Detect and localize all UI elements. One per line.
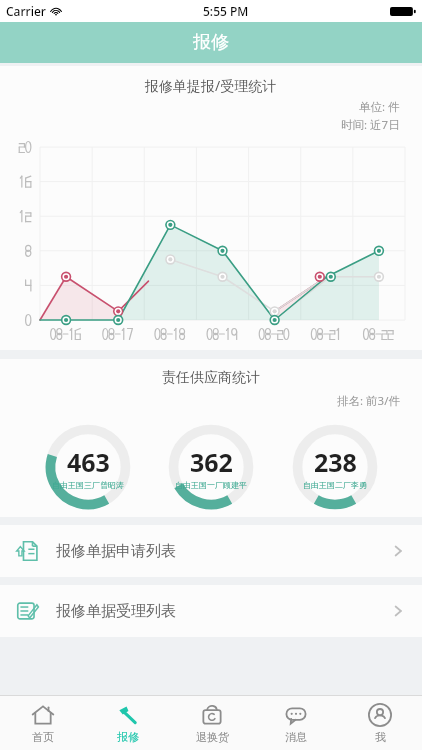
staticText: 自由王国三厂曾昭涛 xyxy=(52,480,124,490)
staticText: 我 xyxy=(375,730,386,744)
staticText: 自由王国二厂李勇 xyxy=(303,480,367,490)
staticText: 单位: 件 xyxy=(359,99,400,115)
button[interactable]: 消息 xyxy=(254,696,338,750)
staticText: 消息 xyxy=(285,730,307,744)
staticText: 首页 xyxy=(32,730,54,744)
button[interactable]: 报修 xyxy=(85,696,170,750)
staticText: 报修单提报/受理统计 xyxy=(145,76,277,95)
staticText: Carrier xyxy=(6,3,46,19)
staticText: 报修 xyxy=(193,31,229,54)
button[interactable]: 我 xyxy=(338,696,422,750)
staticText: 362 xyxy=(190,445,233,479)
staticText: 退换货 xyxy=(196,730,229,744)
staticText: 238 xyxy=(314,445,357,479)
staticText: 463 xyxy=(67,445,110,479)
staticText: 责任供应商统计 xyxy=(162,369,260,387)
button[interactable]: 首页 xyxy=(0,696,85,750)
staticText: 排名: 前3/件 xyxy=(337,393,400,409)
button[interactable]: 报修单据申请列表 xyxy=(0,525,422,577)
staticText: 报修单据受理列表 xyxy=(56,602,176,621)
staticText: 时间: 近7日 xyxy=(341,117,400,133)
staticText: 自由王国一厂顾建平 xyxy=(175,480,247,490)
staticText: 报修 xyxy=(117,730,139,744)
staticText: 报修单据申请列表 xyxy=(56,542,176,561)
staticText: 5:55 PM xyxy=(203,3,249,19)
button[interactable]: 报修单据受理列表 xyxy=(0,585,422,637)
button[interactable]: 退换货 xyxy=(170,696,254,750)
